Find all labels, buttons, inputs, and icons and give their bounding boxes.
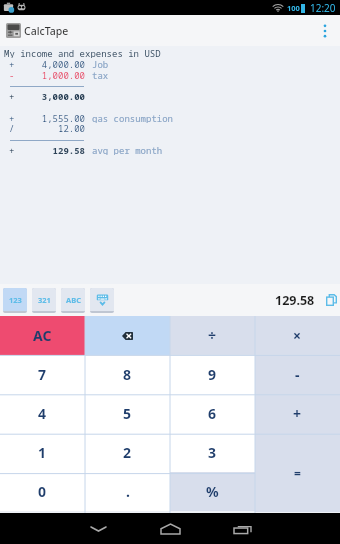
staticText: 5 [123,404,132,423]
staticText: 129.58 [275,292,315,309]
button[interactable]: × [255,316,340,355]
staticText: 4,000.00 [36,58,85,69]
staticText: / [9,122,36,133]
button[interactable]: 0 [0,472,85,511]
staticText: 3 [208,443,217,462]
staticText: - [295,365,300,384]
button[interactable]: 9 [170,355,255,394]
button[interactable]: % [170,472,255,511]
button[interactable]: 4 [0,394,85,433]
button[interactable]: 1 [0,433,85,472]
staticText: 1,000.00 [36,69,85,80]
button[interactable]: 5 [85,394,170,433]
staticText: + [293,404,302,423]
button[interactable]: AC [0,316,85,355]
staticText: CalcTape [24,24,69,38]
staticText: 0 [38,482,47,501]
staticText: % [206,482,219,501]
button[interactable]: Recent apps [218,513,266,544]
button[interactable]: + [255,394,340,433]
button[interactable]: 2 [85,433,170,472]
staticText: 2 [123,443,132,462]
staticText: Job [92,58,109,69]
button[interactable]: ABC [61,288,85,311]
button[interactable]: 3 [170,433,255,472]
button[interactable]: 8 [85,355,170,394]
staticText: 129.58 [36,144,85,155]
staticText: = [294,465,301,481]
staticText: . [126,482,130,501]
staticText: 3,000.00 [36,90,85,101]
button[interactable]: Back [74,513,122,544]
staticText: 123 [9,295,22,305]
staticText: - [9,69,36,80]
staticText: 12:20 [310,1,336,15]
button[interactable]: = [255,433,340,512]
staticText: My income and expenses in USD [4,47,161,58]
staticText: 100 [287,3,300,13]
staticText: + [9,144,36,155]
staticText: 1,555.00 [36,112,85,123]
button[interactable]: Home [146,513,194,544]
staticText: + [9,90,36,101]
button[interactable]: Hide keyboard [90,288,114,311]
staticText: 8 [123,365,132,384]
staticText: 6 [208,404,217,423]
staticText: 7 [38,365,47,384]
staticText: ABC [66,295,81,305]
staticText: + [9,58,36,69]
staticText: 12.00 [36,122,85,133]
button[interactable]: 7 [0,355,85,394]
staticText: + [9,112,36,123]
staticText: tax [92,69,109,80]
button[interactable]: 6 [170,394,255,433]
button[interactable]: - [255,355,340,394]
button[interactable]: 321 [32,288,56,311]
button[interactable]: ÷ [170,316,255,355]
staticText: AC [33,326,52,345]
button[interactable]: More options [311,17,339,45]
button[interactable]: Copy result [324,293,338,307]
button[interactable]: 123 [3,288,27,311]
staticText: avg per month [92,144,163,155]
staticText: ÷ [208,326,217,345]
staticText: 9 [208,365,217,384]
button[interactable]: . [85,472,170,511]
staticText: 1 [38,443,47,462]
staticText: gas consumption [92,112,174,123]
staticText: 4 [38,404,47,423]
staticText: 321 [38,295,51,305]
staticText: × [293,326,302,345]
button[interactable]: Backspace [85,316,170,355]
